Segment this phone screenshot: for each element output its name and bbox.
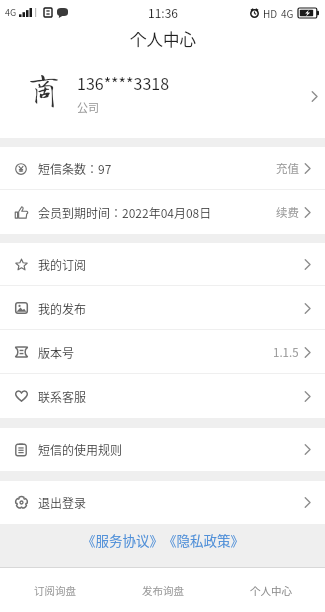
staticText: 个人中心 [130,27,196,51]
button[interactable]: 会员到期时间：2022年04月08日 [0,190,325,234]
button[interactable]: 商 [0,55,325,138]
staticText: HD [263,6,278,20]
staticText: 版本号 [38,344,75,361]
button[interactable]: 短信条数：97 [0,147,325,190]
staticText: 公司 [77,99,99,115]
button[interactable]: 《服务协议》 [82,530,163,550]
staticText: 136****3318 [77,71,170,94]
button[interactable]: 退出登录 [0,481,325,524]
staticText: 会员到期时间：2022年04月08日 [38,204,212,221]
button[interactable]: 我的订阅 [0,243,325,286]
staticText: 4G [281,6,294,20]
staticText: 1.1.5 [273,344,299,361]
button[interactable]: 我的发布 [0,286,325,330]
staticText: 短信条数：97 [38,160,112,177]
staticText: 订阅询盘 [34,583,76,598]
staticText: 续费 [276,204,299,221]
staticText: 退出登录 [38,494,87,511]
button[interactable]: 个人中心 [217,568,325,612]
staticText: 发布询盘 [142,583,184,598]
staticText: 11:36 [148,4,178,21]
staticText: 商 [26,70,63,106]
button[interactable]: 联系客服 [0,374,325,418]
staticText: 个人中心 [250,583,292,598]
button[interactable]: 订阅询盘 [0,568,109,612]
button[interactable]: 《隐私政策》 [163,530,244,550]
staticText: 4G [5,6,17,19]
staticText: 我的发布 [38,300,87,317]
staticText: 短信的使用规则 [38,441,123,458]
button[interactable]: 版本号 [0,330,325,374]
button[interactable]: 发布询盘 [109,568,217,612]
staticText: 我的订阅 [38,256,87,273]
staticText: 充值 [276,160,299,177]
staticText: 联系客服 [38,388,87,405]
button[interactable]: 短信的使用规则 [0,428,325,471]
